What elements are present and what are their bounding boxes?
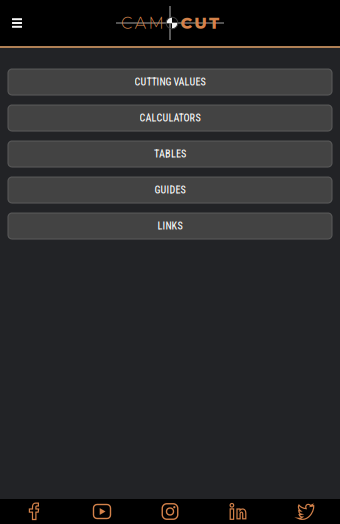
button[interactable]: LinkedIn bbox=[204, 501, 272, 521]
button[interactable]: Facebook bbox=[0, 501, 68, 521]
button[interactable]: Twitter bbox=[272, 501, 340, 521]
staticText: T bbox=[209, 13, 219, 33]
staticText: CUTTING VALUES bbox=[134, 76, 205, 88]
staticText: LINKS bbox=[157, 220, 182, 232]
staticText: TABLES bbox=[154, 148, 186, 160]
staticText: GUIDES bbox=[154, 184, 185, 196]
button[interactable]: CALCULATORS bbox=[8, 105, 332, 131]
button[interactable]: Instagram bbox=[136, 501, 204, 521]
staticText: M bbox=[148, 13, 163, 33]
button[interactable]: CUTTING VALUES bbox=[8, 69, 332, 95]
staticText: U bbox=[194, 13, 207, 33]
staticText: C bbox=[121, 13, 132, 33]
button[interactable]: GUIDES bbox=[8, 177, 332, 203]
button[interactable]: Menu bbox=[4, 8, 30, 38]
staticText: C bbox=[180, 13, 192, 33]
button[interactable]: LINKS bbox=[8, 213, 332, 239]
staticText: CALCULATORS bbox=[139, 112, 200, 124]
staticText: A bbox=[135, 13, 146, 33]
button[interactable]: YouTube bbox=[68, 501, 136, 521]
button[interactable]: TABLES bbox=[8, 141, 332, 167]
